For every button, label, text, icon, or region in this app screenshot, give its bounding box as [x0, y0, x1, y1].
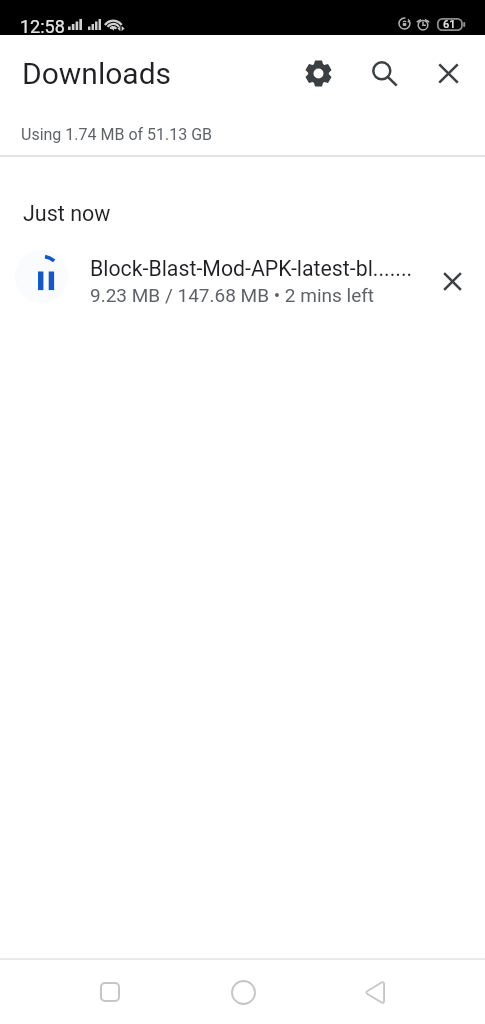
staticText: 12:58	[20, 16, 65, 37]
button[interactable]: Recent apps	[81, 963, 139, 1021]
button[interactable]: Block-Blast-Mod-APK-latest-bl.......	[0, 242, 485, 314]
staticText: Block-Blast-Mod-APK-latest-bl.......	[90, 256, 413, 281]
staticText: Using 1.74 MB of 51.13 GB	[21, 125, 213, 144]
staticText: 61	[443, 18, 456, 31]
button[interactable]: Search	[360, 49, 408, 97]
button[interactable]: Home	[214, 963, 272, 1021]
staticText: 9.23 MB / 147.68 MB • 2 mins left	[90, 284, 375, 306]
button[interactable]: Back	[345, 963, 403, 1021]
button[interactable]: Cancel download	[429, 258, 476, 305]
button[interactable]: Settings	[294, 49, 342, 97]
staticText: Downloads	[22, 56, 172, 91]
button[interactable]: Close	[424, 49, 472, 97]
staticText: Just now	[23, 201, 111, 226]
